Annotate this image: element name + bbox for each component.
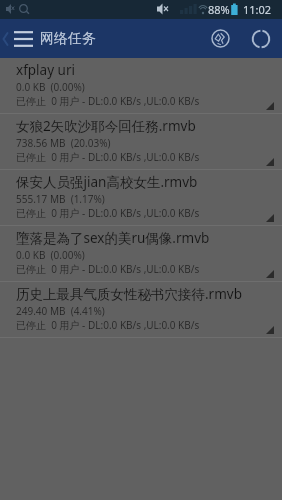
staticText: 已停止 0 用户 - DL:0.0 KB/s ,UL:0.0 KB/s xyxy=(16,262,200,276)
staticText: 0.0 KB (0.00%) xyxy=(16,248,85,262)
staticText: xfplay uri xyxy=(16,61,75,79)
staticText: 网络任务 xyxy=(40,30,96,48)
staticText: 0.0 KB (0.00%) xyxy=(16,80,85,94)
staticText: 11:02 xyxy=(243,2,272,17)
button[interactable]: 女狼2矢吹沙耶今回任務.rmvb xyxy=(0,114,282,170)
staticText: 保安人员强jian高校女生.rmvb xyxy=(16,173,198,191)
staticText: 88% xyxy=(208,2,230,17)
staticText: 已停止 0 用户 - DL:0.0 KB/s ,UL:0.0 KB/s xyxy=(16,206,200,220)
button[interactable]: xfplay uri xyxy=(0,58,282,114)
button[interactable]: 墮落是為了sex的美ru偶像.rmvb xyxy=(0,226,282,282)
staticText: 738.56 MB (20.03%) xyxy=(16,136,111,150)
staticText: 555.17 MB (1.17%) xyxy=(16,192,105,206)
button[interactable]: Refresh xyxy=(240,19,282,58)
staticText: 249.40 MB (4.41%) xyxy=(16,304,105,318)
staticText: 历史上最具气质女性秘书穴接待.rmvb xyxy=(16,285,242,303)
staticText: 已停止 0 用户 - DL:0.0 KB/s ,UL:0.0 KB/s xyxy=(16,94,200,108)
staticText: 女狼2矢吹沙耶今回任務.rmvb xyxy=(16,117,196,135)
button[interactable]: Network xyxy=(200,19,240,58)
staticText: 已停止 0 用户 - DL:0.0 KB/s ,UL:0.0 KB/s xyxy=(16,150,200,164)
button[interactable]: 保安人员强jian高校女生.rmvb xyxy=(0,170,282,226)
staticText: 已停止 0 用户 - DL:0.0 KB/s ,UL:0.0 KB/s xyxy=(16,318,200,332)
button[interactable]: Menu xyxy=(10,19,37,58)
staticText: 墮落是為了sex的美ru偶像.rmvb xyxy=(16,229,210,247)
button[interactable]: 历史上最具气质女性秘书穴接待.rmvb xyxy=(0,282,282,338)
